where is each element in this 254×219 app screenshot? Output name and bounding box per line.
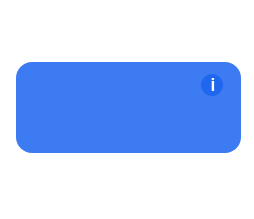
button[interactable]: Info bbox=[16, 62, 241, 153]
button[interactable]: Info bbox=[201, 74, 223, 96]
